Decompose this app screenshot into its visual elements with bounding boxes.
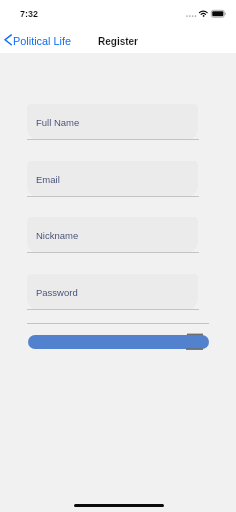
button[interactable]: Full Name: [27, 104, 198, 140]
staticText: Password: [36, 287, 78, 298]
button[interactable]: Password: [27, 274, 198, 310]
button[interactable]: Register: [28, 335, 209, 349]
button[interactable]: Email: [27, 161, 198, 197]
staticText: Register: [98, 36, 139, 47]
staticText: Nickname: [36, 230, 79, 241]
staticText: Full Name: [36, 117, 80, 128]
button[interactable]: Nickname: [27, 217, 198, 253]
staticText: Political Life: [13, 35, 72, 47]
staticText: 7:32: [20, 9, 39, 19]
button[interactable]: Political Life: [2, 31, 72, 49]
staticText: Email: [36, 174, 60, 185]
